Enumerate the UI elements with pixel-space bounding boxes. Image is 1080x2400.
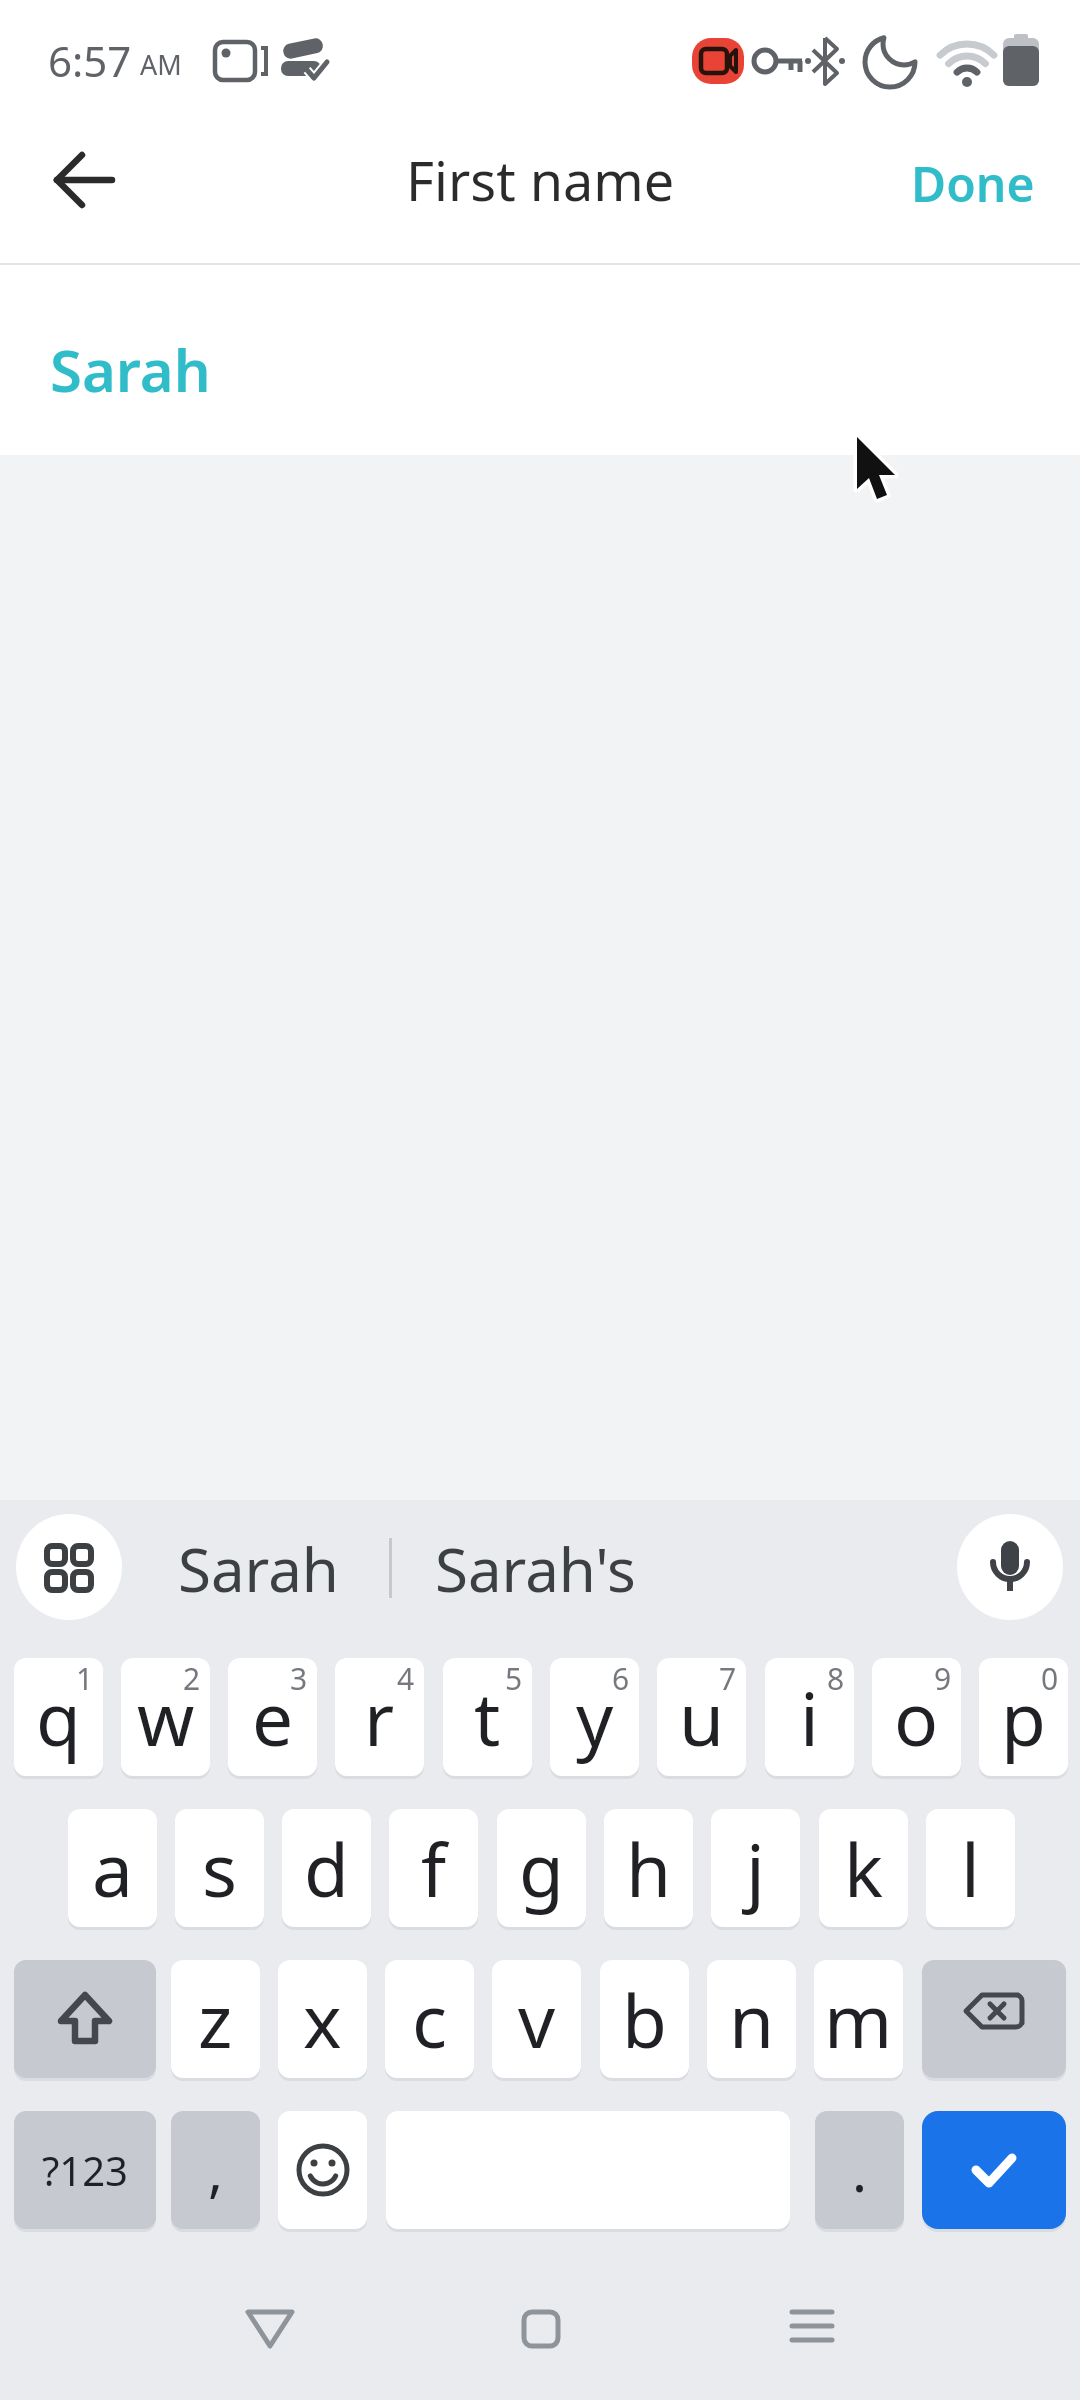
staticText: a [92,1819,133,1918]
button[interactable]: m [814,1960,903,2078]
button[interactable]: q [14,1658,103,1776]
staticText: k [844,1819,883,1918]
button[interactable]: v [492,1960,581,2078]
staticText: e [252,1668,294,1767]
button[interactable] [220,2290,320,2380]
button[interactable]: l [926,1809,1015,1927]
staticText: Sarah [50,330,211,409]
staticText: 9 [934,1658,952,1699]
button[interactable]: ?123 [14,2111,156,2229]
staticText: , [208,2132,224,2208]
button[interactable]: Sarah [130,1528,386,1608]
staticText: 6 [612,1658,630,1699]
staticText: 3 [290,1658,308,1699]
button[interactable]: i [765,1658,854,1776]
staticText: 8 [827,1658,845,1699]
staticText: AM [140,46,182,83]
staticText: 2 [183,1658,201,1699]
staticText: Sarah's [435,1528,636,1608]
button[interactable]: e [228,1658,317,1776]
button[interactable] [490,2290,590,2380]
staticText: s [202,1819,237,1918]
staticText: f [421,1819,447,1918]
staticText: j [746,1819,765,1918]
staticText: ?123 [42,2143,128,2197]
button[interactable]: p [979,1658,1068,1776]
button[interactable]: k [819,1809,908,1927]
button[interactable]: g [497,1809,586,1927]
staticText: p [1001,1668,1046,1767]
button[interactable]: x [278,1960,367,2078]
button[interactable]: y [550,1658,639,1776]
button[interactable]: , [171,2111,260,2229]
staticText: r [364,1668,395,1767]
staticText: w [137,1668,195,1767]
staticText: 4 [397,1658,415,1699]
button[interactable]: c [385,1960,474,2078]
staticText: z [198,1970,233,2069]
staticText: First name [406,143,675,217]
button[interactable]: t [443,1658,532,1776]
button[interactable] [922,2111,1066,2229]
button[interactable] [278,2111,367,2229]
staticText: Sarah [178,1528,339,1608]
button[interactable] [14,1960,156,2078]
button[interactable]: o [872,1658,961,1776]
button[interactable] [957,1514,1063,1620]
button[interactable]: j [711,1809,800,1927]
button[interactable] [30,130,130,230]
staticText: v [518,1970,556,2069]
button[interactable]: r [335,1658,424,1776]
button[interactable]: s [175,1809,264,1927]
staticText: h [626,1819,672,1918]
button[interactable]: b [600,1960,689,2078]
staticText: 5 [505,1658,523,1699]
staticText: d [304,1819,349,1918]
staticText: l [961,1819,980,1918]
button[interactable]: n [707,1960,796,2078]
staticText: c [412,1970,448,2069]
button[interactable]: f [389,1809,478,1927]
staticText: u [679,1668,725,1767]
staticText: i [800,1668,819,1767]
staticText: n [729,1970,775,2069]
button[interactable]: a [68,1809,157,1927]
button[interactable] [922,1960,1066,2078]
staticText: 1 [76,1658,94,1699]
staticText: . [852,2132,868,2208]
button[interactable]: . [815,2111,904,2229]
button[interactable]: d [282,1809,371,1927]
button[interactable]: Done [888,133,1058,233]
button[interactable]: z [171,1960,260,2078]
button[interactable]: w [121,1658,210,1776]
button[interactable]: h [604,1809,693,1927]
staticText: 0 [1041,1658,1059,1699]
button[interactable] [762,2290,862,2380]
button[interactable]: Sarah's [392,1528,678,1608]
staticText: 6:57 [48,32,132,88]
staticText: Done [911,151,1035,216]
button[interactable] [16,1514,122,1620]
staticText: x [303,1970,342,2069]
button[interactable]: u [657,1658,746,1776]
staticText: b [622,1970,667,2069]
staticText: y [576,1668,614,1767]
staticText: q [36,1668,81,1767]
staticText: g [519,1819,564,1918]
staticText: t [474,1668,501,1767]
staticText: o [894,1668,939,1767]
staticText: m [824,1970,893,2069]
staticText: 7 [719,1658,737,1699]
